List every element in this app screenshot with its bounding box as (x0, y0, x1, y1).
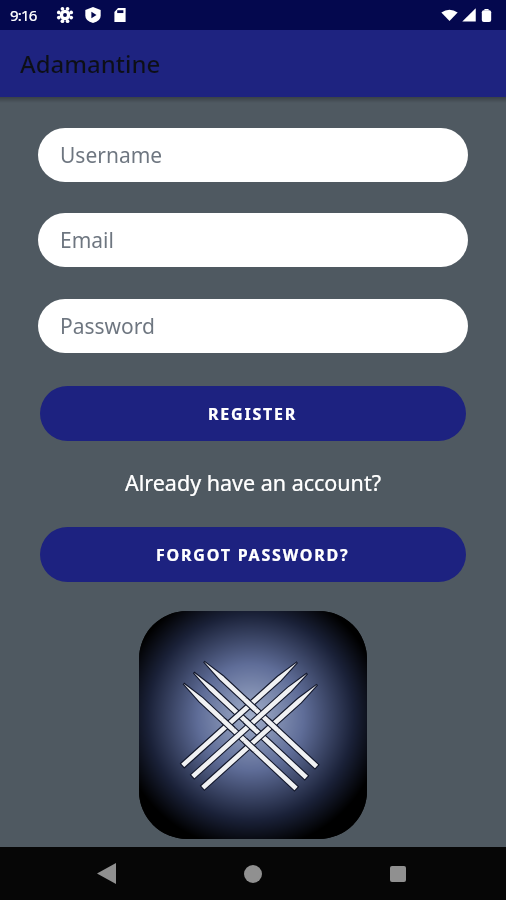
staticText: Adamantine (20, 47, 161, 80)
staticText: REGISTER (208, 403, 298, 425)
staticText: 9:16 (10, 5, 37, 25)
button[interactable]: Email (38, 213, 468, 267)
button[interactable]: Username (38, 128, 468, 182)
button[interactable]: REGISTER (40, 386, 466, 441)
button[interactable] (358, 847, 438, 900)
button[interactable]: Password (38, 299, 468, 353)
staticText: Username (60, 141, 163, 170)
staticText: Email (60, 226, 114, 255)
button[interactable] (66, 847, 146, 900)
staticText: FORGOT PASSWORD? (156, 544, 350, 566)
staticText: Password (60, 312, 155, 341)
button[interactable]: FORGOT PASSWORD? (40, 527, 466, 582)
staticText: Already have an account? (125, 468, 382, 497)
button[interactable] (139, 611, 367, 839)
button[interactable] (213, 847, 293, 900)
